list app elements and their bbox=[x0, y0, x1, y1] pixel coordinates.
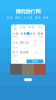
staticText: 成人 1 bbox=[34, 51, 43, 54]
button[interactable]: 旅游 bbox=[35, 16, 41, 19]
staticText: 旅游 bbox=[35, 16, 41, 19]
button[interactable]: 多程 bbox=[27, 25, 36, 29]
button[interactable]: 攻略 bbox=[43, 16, 49, 19]
staticText: 舱位 bbox=[13, 51, 19, 54]
button[interactable]: More bbox=[24, 78, 32, 81]
staticText: 中转 bbox=[13, 60, 19, 63]
staticText: 06-12 bbox=[20, 41, 29, 45]
staticText: 搜索 bbox=[32, 60, 38, 63]
staticText: 多程 bbox=[29, 25, 35, 29]
staticText: 往返 bbox=[20, 25, 26, 29]
staticText: 火车票 bbox=[23, 16, 32, 19]
staticText: 上海 虹桥 bbox=[13, 32, 27, 35]
staticText: 攻略 bbox=[43, 16, 49, 19]
staticText: 酒店 bbox=[15, 16, 21, 19]
button[interactable]: 日期 bbox=[11, 40, 45, 49]
button[interactable]: 往返 bbox=[18, 25, 27, 29]
button[interactable]: 上海 虹桥 bbox=[11, 30, 45, 39]
staticText: 更多 bbox=[38, 25, 44, 29]
button[interactable]: 火车票 bbox=[23, 16, 32, 19]
staticText: 北京 首都 bbox=[29, 32, 43, 35]
staticText: 周三 出发 bbox=[33, 40, 43, 46]
button[interactable]: 机票 bbox=[7, 16, 13, 19]
button[interactable]: Promotion banner bbox=[0, 64, 56, 75]
staticText: 经济舱 bbox=[20, 51, 29, 54]
staticText: 携程旅行网 bbox=[15, 8, 40, 15]
button[interactable]: 更多 bbox=[38, 25, 45, 29]
staticText: 日期 bbox=[13, 41, 19, 45]
button[interactable]: 搜索 bbox=[26, 59, 43, 63]
staticText: 机票 bbox=[7, 16, 13, 19]
staticText: 单程 bbox=[14, 24, 17, 30]
button[interactable]: 酒店 bbox=[15, 16, 21, 19]
button[interactable]: 舱位 bbox=[11, 49, 45, 58]
button[interactable]: 单程 bbox=[13, 24, 18, 30]
